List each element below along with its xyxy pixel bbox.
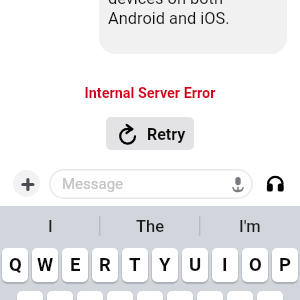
staticText: I'm [239,217,261,236]
button[interactable]: S [47,291,73,300]
button[interactable]: R [92,248,118,282]
button[interactable]: O [242,248,268,282]
button[interactable]: I'm [200,206,300,246]
button[interactable]: G [137,291,163,300]
staticText: P [279,254,291,276]
button[interactable]: I [0,206,100,246]
staticText: Retry [147,125,186,144]
staticText: T [129,254,141,276]
button[interactable]: Y [152,248,178,282]
staticText: U [189,254,202,276]
staticText: W [37,254,54,276]
staticText: devices on both Android and iOS. [108,0,230,28]
button[interactable]: A [17,291,43,300]
staticText: Q [9,254,22,276]
button[interactable]: Audio [264,174,285,195]
staticText: I [222,254,228,276]
staticText: O [249,254,262,276]
staticText: Y [159,254,171,276]
button[interactable]: P [272,248,298,282]
staticText: E [70,254,81,276]
button[interactable]: Add attachment [13,170,40,197]
button[interactable]: K [227,291,253,300]
button[interactable]: I [212,248,238,282]
staticText: Internal Server Error [0,85,300,102]
button[interactable]: Message [49,169,253,199]
button[interactable]: Q [2,248,28,282]
button[interactable]: D [77,291,103,300]
button[interactable]: E [62,248,88,282]
button[interactable]: W [32,248,58,282]
button[interactable]: L [257,291,283,300]
staticText: R [99,254,111,276]
staticText: The [136,217,165,236]
staticText: Message [62,175,124,193]
button[interactable]: The [100,206,200,246]
button[interactable]: T [122,248,148,282]
staticText: I [48,217,53,236]
button[interactable]: U [182,248,208,282]
button[interactable]: Retry [106,117,194,150]
button[interactable]: Voice input [226,173,250,197]
button[interactable]: H [167,291,193,300]
button[interactable]: F [107,291,133,300]
button[interactable]: J [197,291,223,300]
